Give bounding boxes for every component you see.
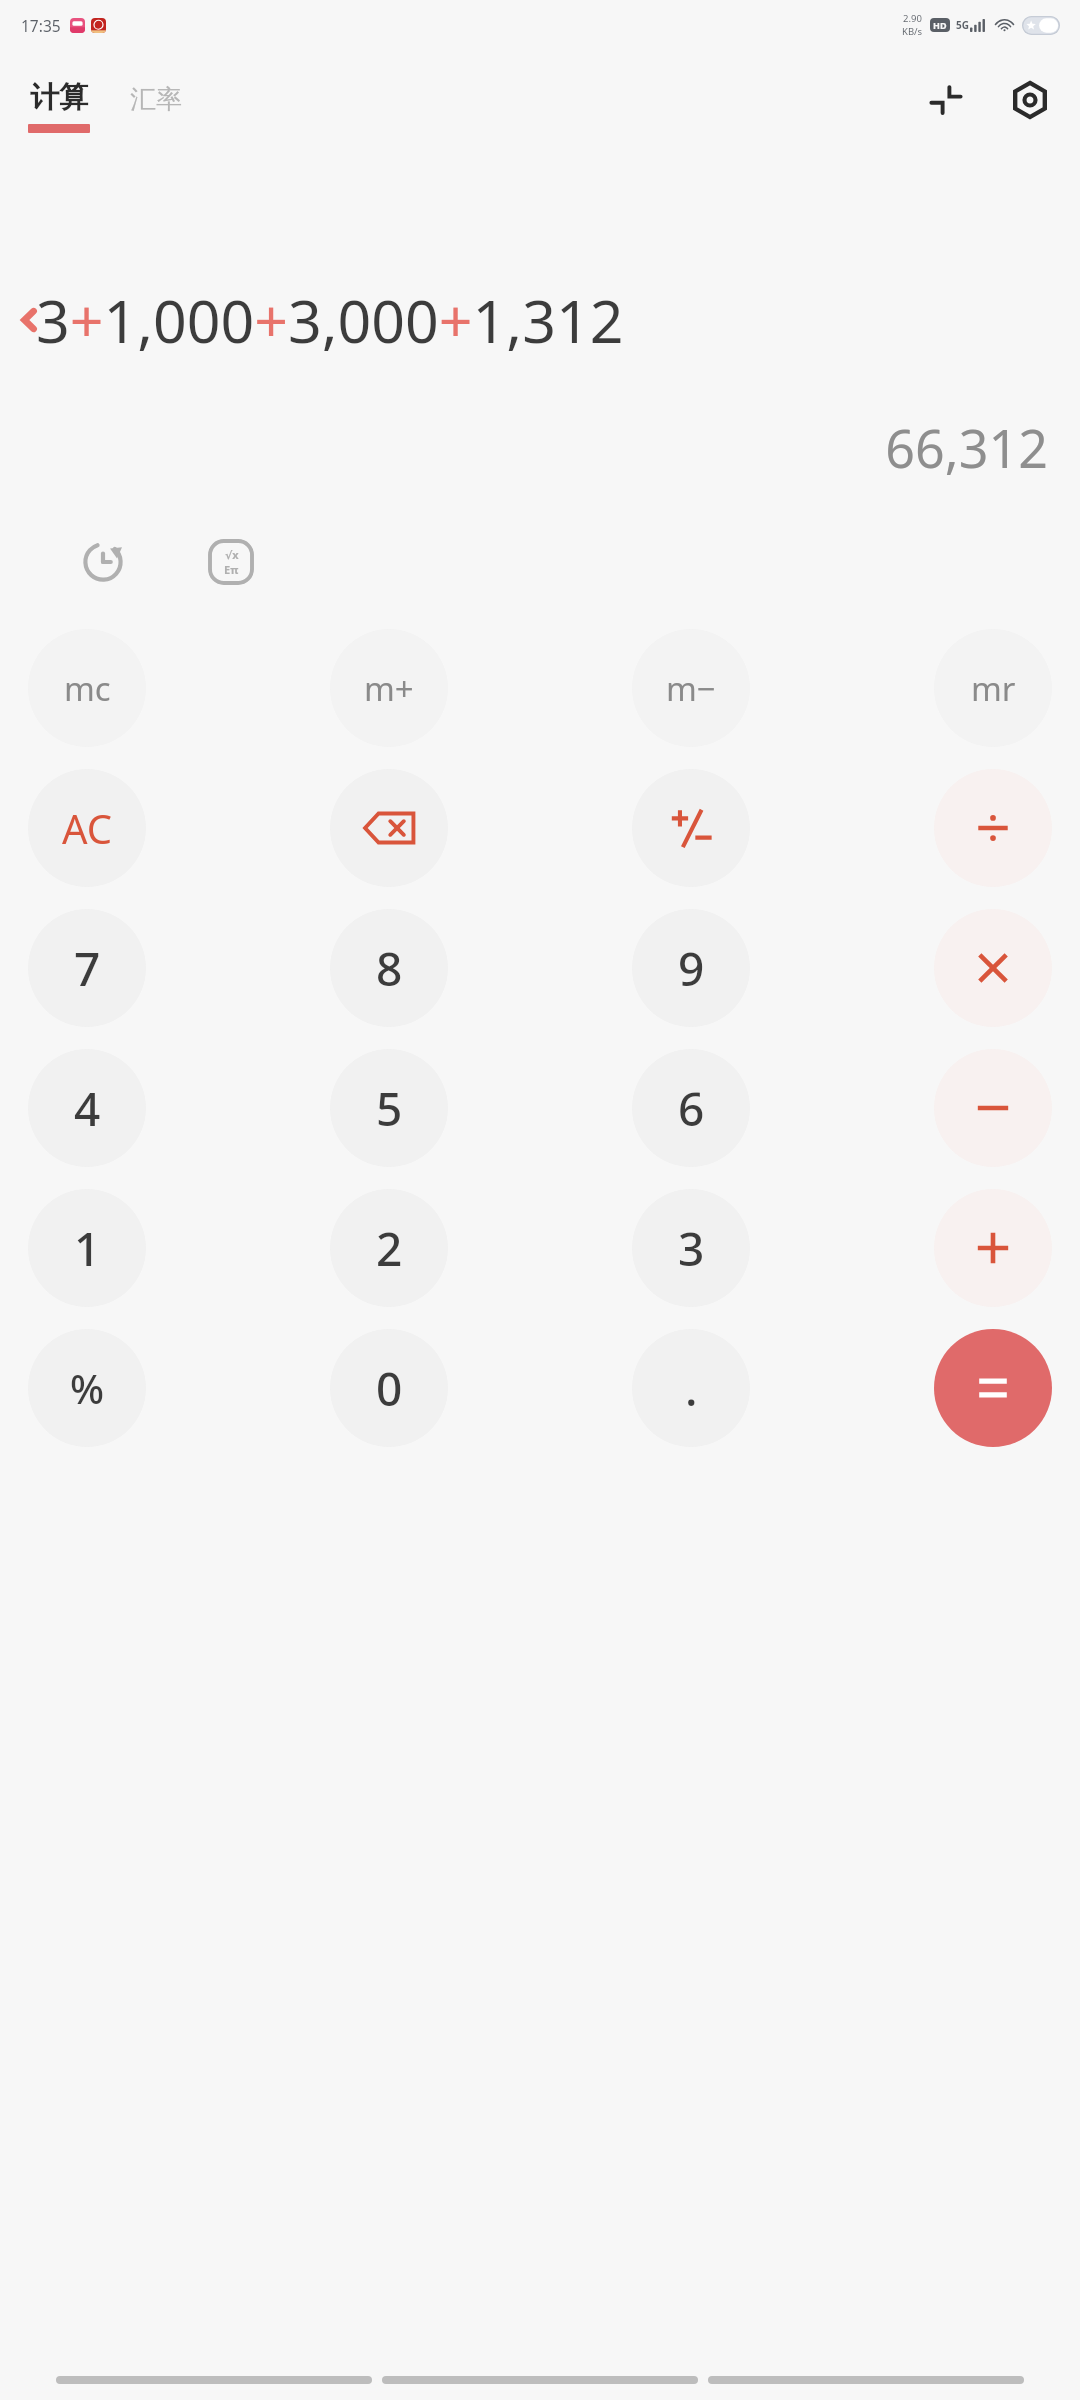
button[interactable]: 7 xyxy=(28,909,146,1027)
staticText: mr xyxy=(971,666,1016,711)
staticText: KB/s xyxy=(902,25,923,38)
button[interactable]: Backspace xyxy=(330,769,448,887)
staticText: 2.90 xyxy=(903,12,922,25)
button[interactable]: mr xyxy=(934,629,1052,747)
staticText: 2 xyxy=(376,1217,403,1280)
button[interactable]: Minus xyxy=(934,1049,1052,1167)
staticText: 8 xyxy=(376,937,403,1000)
staticText: 5G xyxy=(956,18,969,32)
button[interactable]: % xyxy=(28,1329,146,1447)
staticText: . xyxy=(685,1357,698,1420)
button[interactable]: 1 xyxy=(28,1189,146,1307)
button[interactable]: m+ xyxy=(330,629,448,747)
staticText: 7 xyxy=(74,937,101,1000)
button[interactable]: m− xyxy=(632,629,750,747)
staticText: √x xyxy=(225,547,239,562)
button[interactable]: Fullscreen xyxy=(918,72,974,128)
staticText: 9 xyxy=(678,937,705,1000)
button[interactable]: 9 xyxy=(632,909,750,1027)
staticText: % xyxy=(70,1361,105,1415)
button[interactable]: 4 xyxy=(28,1049,146,1167)
button[interactable]: 0 xyxy=(330,1329,448,1447)
staticText: HD xyxy=(933,19,947,31)
button[interactable]: Plus xyxy=(934,1189,1052,1307)
staticText: 6 xyxy=(678,1077,705,1140)
staticText: m− xyxy=(666,666,716,711)
button[interactable]: Divide xyxy=(934,769,1052,887)
staticText: 3 xyxy=(678,1217,705,1280)
staticText: m+ xyxy=(364,666,414,711)
button[interactable]: AC xyxy=(28,769,146,887)
button[interactable]: Equals xyxy=(934,1329,1052,1447)
button[interactable]: 5 xyxy=(330,1049,448,1167)
button[interactable]: Settings xyxy=(1002,72,1058,128)
button[interactable]: 2 xyxy=(330,1189,448,1307)
staticText: AC xyxy=(62,801,113,855)
staticText: 3+1,000+3,000+1,312 xyxy=(36,280,624,360)
button[interactable]: 计算 xyxy=(20,75,98,137)
staticText: 0 xyxy=(376,1357,403,1420)
staticText: Eπ xyxy=(224,562,239,577)
staticText: 4 xyxy=(74,1077,101,1140)
button[interactable]: . xyxy=(632,1329,750,1447)
staticText: 66,312 xyxy=(0,412,1048,483)
button[interactable]: 8 xyxy=(330,909,448,1027)
staticText: mc xyxy=(64,666,111,711)
button[interactable]: History xyxy=(70,529,136,595)
staticText: 计算 xyxy=(30,79,88,116)
button[interactable]: Plus minus xyxy=(632,769,750,887)
staticText: 汇率 xyxy=(130,83,182,116)
button[interactable]: 6 xyxy=(632,1049,750,1167)
staticText: 17:35 xyxy=(21,15,61,36)
button[interactable]: 汇率 xyxy=(122,86,190,127)
button[interactable]: 3 xyxy=(632,1189,750,1307)
button[interactable]: Scientific mode xyxy=(198,529,264,595)
staticText: 5 xyxy=(376,1077,403,1140)
button[interactable]: mc xyxy=(28,629,146,747)
staticText: 1 xyxy=(74,1217,101,1280)
button[interactable]: Multiply xyxy=(934,909,1052,1027)
